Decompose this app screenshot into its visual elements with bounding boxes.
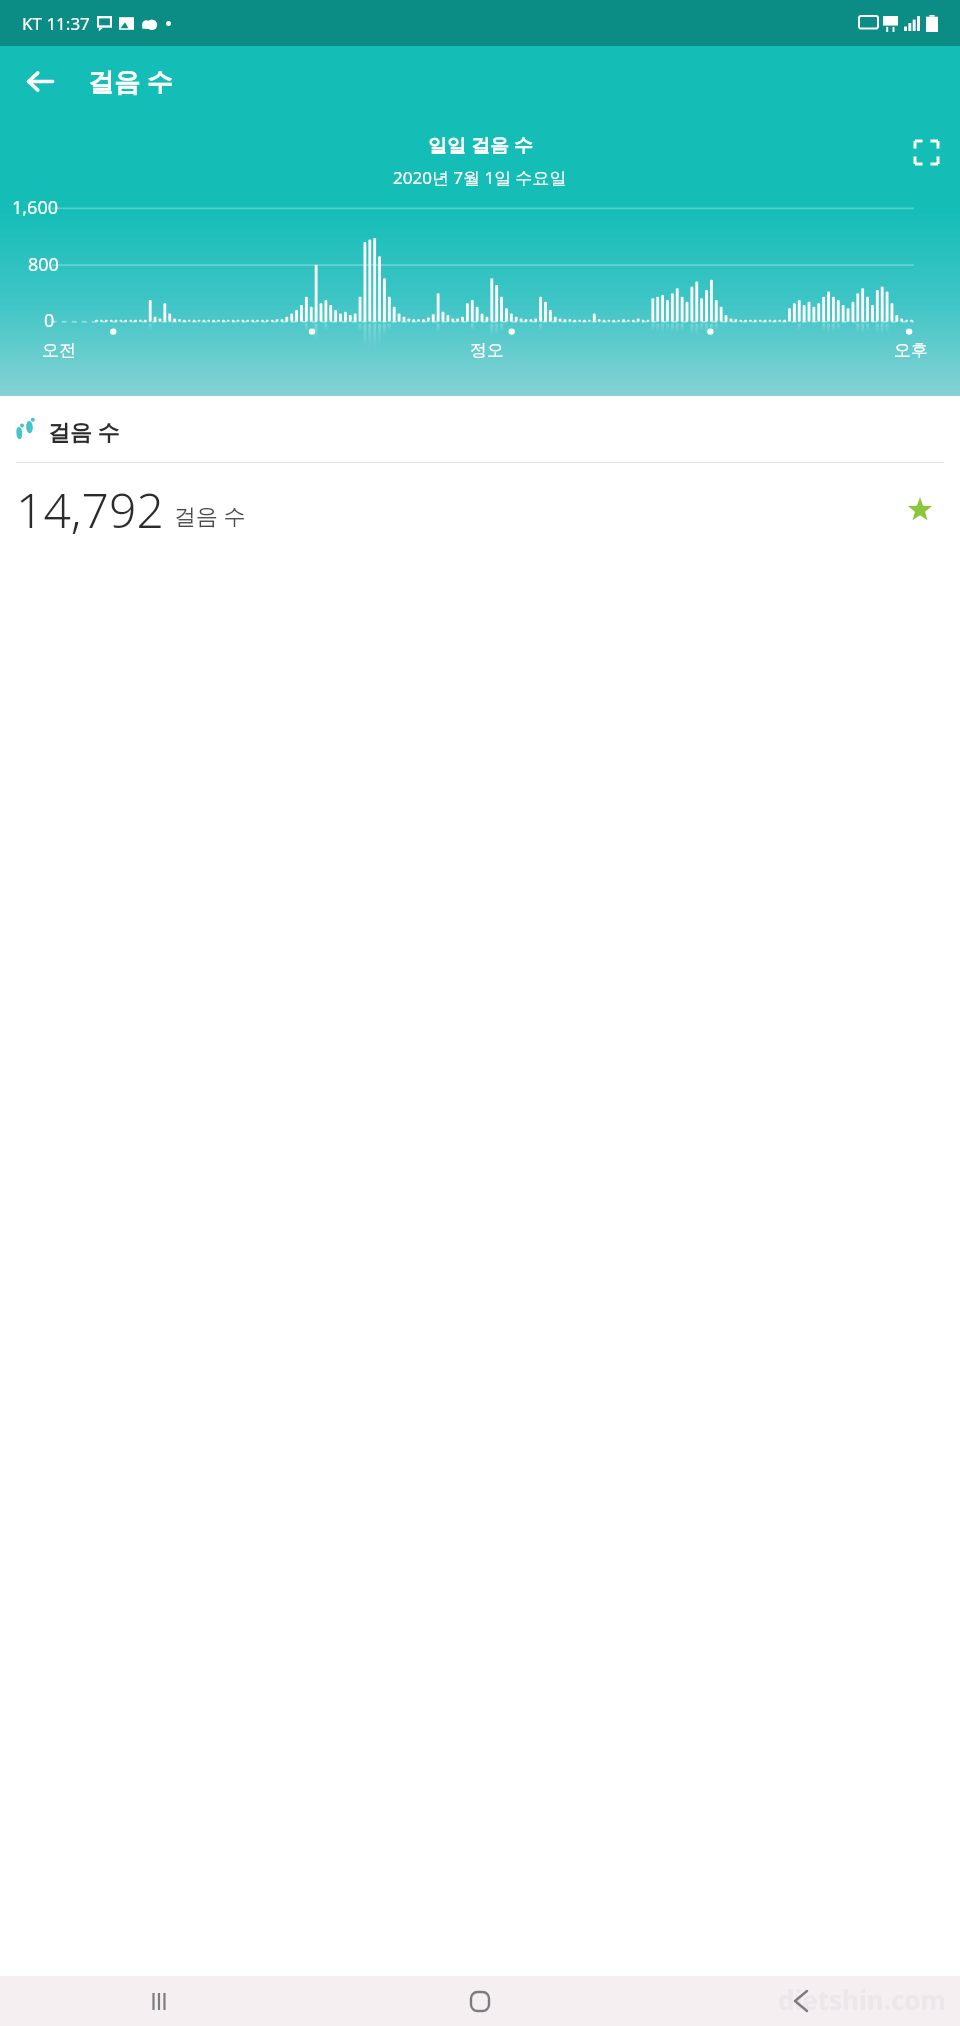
button[interactable]: 최근 앱 [0,1976,320,2026]
staticText: 정오 [470,340,504,361]
button[interactable]: 14,792 [0,463,960,558]
staticText: 걸음 수 [174,500,246,530]
staticText: KT 11:37 [22,12,90,35]
button[interactable]: 걸음 수 [0,410,960,452]
staticText: 오전 [42,340,76,361]
staticText: 800 [28,252,59,277]
staticText: dietshin.com [778,1982,946,2017]
staticText: 0 [44,308,55,333]
staticText: 14,792 [16,477,164,542]
staticText: 1,600 [12,195,59,220]
staticText: 걸음 수 [88,63,173,99]
button[interactable]: 뒤로 [14,55,66,107]
staticText: 2020년 7월 1일 수요일 [393,166,567,189]
button[interactable]: 전체화면 [904,130,948,174]
staticText: 일일 걸음 수 [428,132,533,158]
button[interactable]: 뒤로 [640,1976,960,2026]
staticText: 오후 [894,340,928,361]
button[interactable]: 즐겨찾기 [900,490,940,530]
button[interactable]: 홈 [320,1976,640,2026]
staticText: 걸음 수 [48,416,120,446]
